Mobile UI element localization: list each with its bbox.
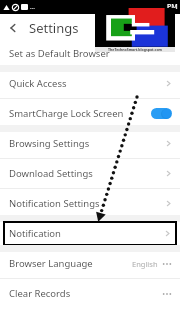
button[interactable]: Download Settings xyxy=(0,162,180,185)
button[interactable]: Clear Records xyxy=(0,282,180,305)
staticText: PM xyxy=(167,2,178,12)
button[interactable]: Set as Default Browser xyxy=(0,42,180,65)
button[interactable]: Quick Access xyxy=(0,72,180,95)
staticText: Quick Access xyxy=(9,77,67,90)
staticText: Browsing Settings xyxy=(9,137,90,150)
staticText: Notification xyxy=(9,227,61,240)
button[interactable]: Notification Settings xyxy=(0,192,180,215)
staticText: Notification Settings xyxy=(9,197,100,210)
staticText: Browser Language xyxy=(9,257,93,270)
staticText: Clear Records xyxy=(9,287,71,300)
staticText: Download Settings xyxy=(9,167,93,180)
staticText: ... xyxy=(30,3,35,11)
staticText: English xyxy=(132,259,158,269)
button[interactable]: Notification xyxy=(4,222,176,245)
staticText: SmartCharge Lock Screen xyxy=(9,107,124,120)
button[interactable]: Browser Language xyxy=(0,252,180,275)
staticText: Set as Default Browser xyxy=(9,47,110,60)
button[interactable]: Back xyxy=(0,15,26,41)
button[interactable]: SmartCharge Lock Screen xyxy=(0,102,180,125)
staticText: Settings xyxy=(29,19,79,37)
button[interactable]: Browsing Settings xyxy=(0,132,180,155)
staticText: TheTechnoSmart.blogspot.com xyxy=(95,47,175,52)
